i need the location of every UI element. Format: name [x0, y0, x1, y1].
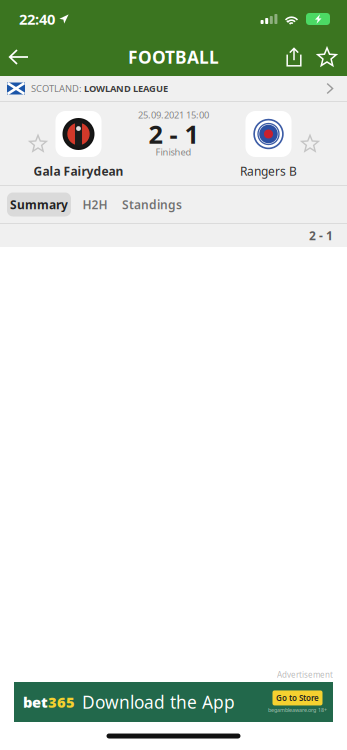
staticText: 25.09.2021 15:00 — [138, 109, 209, 121]
staticText: begambleaware.org 18+ — [268, 706, 327, 714]
button[interactable]: Favourite Rangers B — [291, 102, 329, 185]
staticText: Rangers B — [240, 163, 297, 179]
button[interactable]: Add to favourites — [310, 38, 344, 76]
button[interactable]: H2H — [80, 192, 110, 216]
button[interactable]: Share — [278, 38, 310, 76]
staticText: Standings — [122, 196, 182, 212]
staticText: SCOTLAND: — [31, 82, 84, 95]
staticText: bet — [23, 692, 48, 712]
staticText: Advertisement — [277, 669, 333, 680]
staticText: Finished — [155, 146, 191, 158]
button[interactable]: Standings — [121, 192, 183, 216]
button[interactable]: Favourite Gala Fairydean — [19, 102, 57, 185]
staticText: Download the App — [82, 690, 235, 713]
staticText: Summary — [10, 196, 68, 212]
staticText: Go to Store — [276, 693, 319, 703]
button[interactable]: Back — [0, 38, 38, 76]
button[interactable]: Summary — [7, 192, 71, 216]
staticText: Gala Fairydean — [33, 163, 123, 179]
staticText: LOWLAND LEAGUE — [84, 82, 168, 95]
staticText: 22:40 — [19, 9, 55, 29]
staticText: 2 - 1 — [309, 227, 333, 243]
staticText: 365 — [48, 692, 75, 712]
staticText: FOOTBALL — [128, 45, 219, 68]
staticText: 2 - 1 — [148, 117, 198, 151]
button[interactable]: SCOTLAND: — [0, 76, 347, 101]
button[interactable]: bet — [14, 682, 333, 722]
staticText: H2H — [82, 196, 107, 212]
